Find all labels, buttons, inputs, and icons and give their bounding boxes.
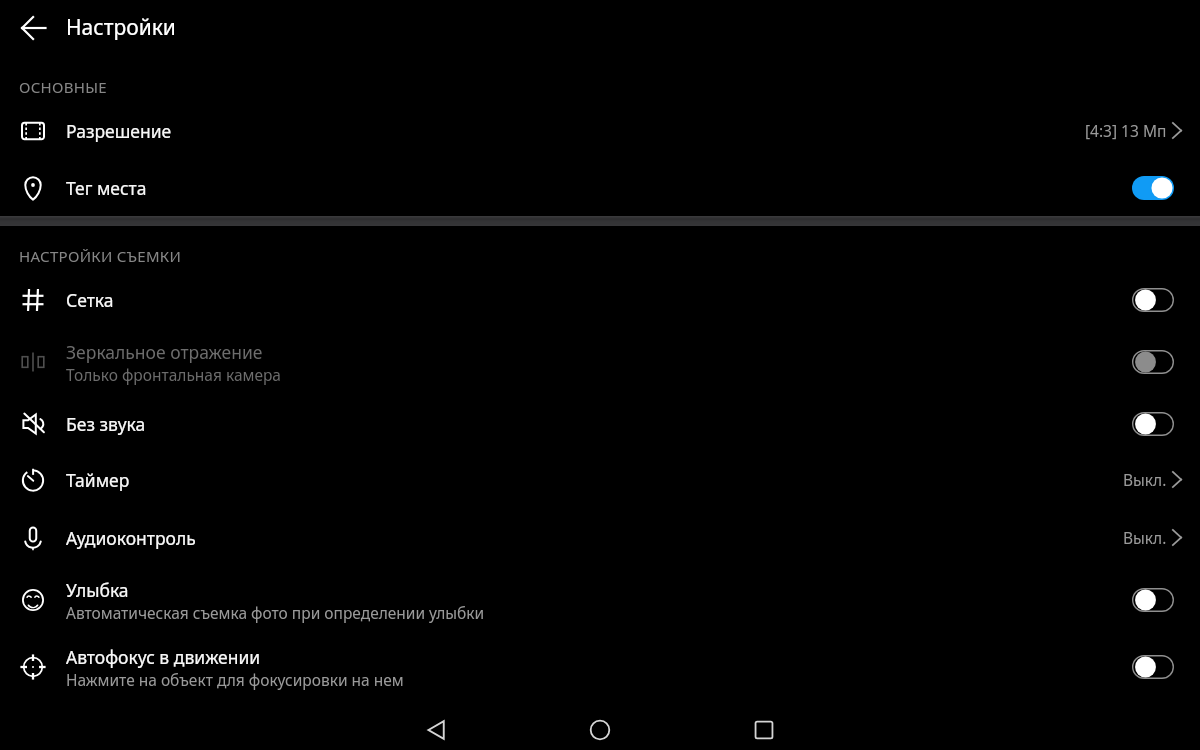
staticText: Без звука	[66, 412, 146, 436]
button[interactable]: Таймер	[0, 451, 1200, 508]
button[interactable]: Switch off	[1132, 288, 1174, 312]
staticText: Сетка	[66, 288, 114, 312]
staticText: Аудиоконтроль	[66, 526, 196, 550]
staticText: ОСНОВНЫЕ	[19, 77, 107, 97]
staticText: Настройки	[66, 13, 176, 42]
staticText: Нажмите на объект для фокусировки на нем	[66, 669, 404, 690]
button[interactable]: Back	[9, 4, 57, 52]
staticText: Разрешение	[66, 119, 172, 143]
staticText: Только фронтальная камера	[66, 364, 281, 385]
staticText: Улыбка	[66, 578, 129, 602]
button[interactable]: Аудиоконтроль	[0, 509, 1200, 566]
button[interactable]: Выкл.	[1123, 469, 1200, 490]
staticText: Зеркальное отражение	[66, 340, 263, 364]
button[interactable]: Switch on	[1132, 176, 1174, 200]
button[interactable]: Выкл.	[1123, 527, 1200, 548]
staticText: Тег места	[66, 176, 147, 200]
button[interactable]: Back	[354, 710, 518, 750]
button[interactable]: Switch off	[1132, 412, 1174, 436]
staticText: Таймер	[66, 468, 130, 492]
staticText: [4:3] 13 Мп	[1085, 120, 1167, 141]
staticText: Автоматическая съемка фото при определен…	[66, 602, 485, 623]
button[interactable]: Switch off	[1132, 655, 1174, 679]
button[interactable]: Улыбка	[0, 567, 1200, 633]
button[interactable]: Сетка	[0, 271, 1200, 328]
button[interactable]: Тег места	[0, 159, 1200, 216]
button[interactable]: Разрешение	[0, 102, 1200, 159]
button[interactable]: Recent apps	[682, 710, 846, 750]
staticText: Автофокус в движении	[66, 645, 261, 669]
button[interactable]: Home	[518, 710, 682, 750]
staticText: НАСТРОЙКИ СЪЕМКИ	[19, 246, 182, 266]
button[interactable]: [4:3] 13 Мп	[1085, 120, 1200, 141]
staticText: Выкл.	[1123, 527, 1167, 548]
button[interactable]: Switch off	[1132, 350, 1174, 374]
button[interactable]: Без звука	[0, 395, 1200, 452]
button[interactable]: Зеркальное отражение	[0, 329, 1200, 395]
staticText: Выкл.	[1123, 469, 1167, 490]
button[interactable]: Автофокус в движении	[0, 634, 1200, 700]
button[interactable]: Switch off	[1132, 588, 1174, 612]
